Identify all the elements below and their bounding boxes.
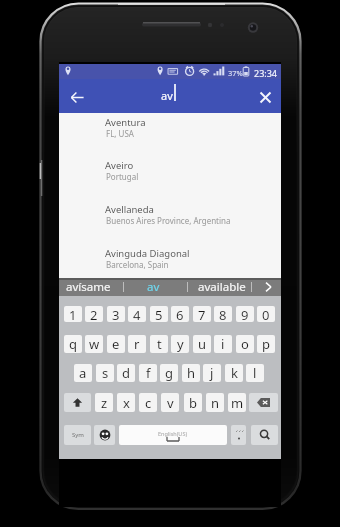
staticText: Aventura (105, 116, 146, 129)
staticText: f (146, 364, 151, 382)
button[interactable]: 8 (214, 306, 232, 322)
staticText: w (89, 335, 100, 353)
button[interactable]: 6 (171, 306, 189, 322)
button[interactable]: i (214, 335, 232, 353)
staticText: g (165, 364, 173, 382)
button[interactable]: available (194, 278, 250, 296)
button[interactable]: s (96, 364, 114, 382)
button[interactable]: 2 (85, 306, 103, 322)
button[interactable]: Avinguda Diagonal (59, 247, 281, 291)
button[interactable]: avísame (61, 278, 115, 296)
button[interactable]: Search (251, 425, 278, 445)
button[interactable]: k (225, 364, 243, 382)
staticText: 5 (155, 306, 163, 322)
button[interactable]: t (150, 335, 168, 353)
button[interactable]: Back (62, 82, 92, 112)
button[interactable]: j (203, 364, 221, 382)
staticText: q (69, 335, 77, 353)
button[interactable]: d (117, 364, 135, 382)
staticText: 4 (133, 306, 141, 322)
button[interactable]: h (182, 364, 200, 382)
staticText: k (231, 364, 238, 382)
staticText: available (198, 279, 246, 295)
staticText: o (241, 335, 249, 353)
button[interactable]: v (161, 393, 179, 412)
staticText: z (101, 394, 108, 412)
staticText: a (79, 364, 87, 382)
button[interactable]: r (128, 335, 146, 353)
button[interactable]: q (64, 335, 82, 353)
staticText: p (262, 335, 270, 353)
button[interactable]: c (139, 393, 157, 412)
staticText: Aveiro (105, 159, 134, 172)
staticText: c (145, 394, 152, 412)
button[interactable]: av (131, 278, 176, 296)
button[interactable]: 3 (107, 306, 125, 322)
button[interactable]: o (236, 335, 254, 353)
button[interactable]: Backspace (249, 393, 278, 412)
staticText: avísame (66, 279, 111, 295)
staticText: 2 (90, 306, 98, 322)
staticText: h (187, 364, 196, 382)
button[interactable]: u (193, 335, 211, 353)
staticText: av (161, 88, 173, 103)
button[interactable]: Clear search (250, 82, 280, 112)
button[interactable]: g (160, 364, 178, 382)
staticText: 8 (219, 306, 227, 322)
staticText: 1 (69, 306, 77, 322)
button[interactable]: 0 (257, 306, 275, 322)
button[interactable]: e (107, 335, 125, 353)
staticText: u (198, 335, 207, 353)
button[interactable]: Aventura (59, 116, 281, 160)
button[interactable]: l (246, 364, 264, 382)
staticText: 23:34 (254, 67, 278, 79)
button[interactable]: n (206, 393, 224, 412)
button[interactable]: 4 (128, 306, 146, 322)
staticText: English(US) (158, 430, 188, 437)
button[interactable]: y (171, 335, 189, 353)
staticText: l (253, 364, 257, 382)
staticText: e (112, 335, 120, 353)
staticText: 6 (176, 306, 184, 322)
staticText: i (221, 335, 225, 353)
staticText: m (231, 394, 244, 412)
staticText: 9 (241, 306, 249, 322)
button[interactable]: f (139, 364, 157, 382)
staticText: FL, USA (106, 128, 134, 139)
button[interactable]: m (228, 393, 246, 412)
staticText: j (210, 364, 214, 382)
staticText: Sym (72, 431, 84, 439)
staticText: 7 (198, 306, 206, 322)
button[interactable]: Sym (64, 425, 91, 445)
button[interactable]: 1 (64, 306, 82, 322)
staticText: y (177, 335, 184, 353)
button[interactable]: p (257, 335, 275, 353)
button[interactable]: w (85, 335, 103, 353)
staticText: av (147, 279, 160, 295)
button[interactable]: x (117, 393, 135, 412)
button[interactable]: 5 (150, 306, 168, 322)
button[interactable]: 7 (193, 306, 211, 322)
staticText: 0 (262, 306, 270, 322)
button[interactable]: Aveiro (59, 159, 281, 203)
button[interactable]: 9 (236, 306, 254, 322)
staticText: Avinguda Diagonal (105, 247, 190, 260)
button[interactable]: More suggestions (257, 278, 281, 296)
button[interactable]: a (74, 364, 92, 382)
staticText: 3 (112, 306, 120, 322)
staticText: t (157, 335, 162, 353)
staticText: x (123, 394, 130, 412)
button[interactable]: Period (231, 425, 246, 445)
staticText: s (102, 364, 109, 382)
button[interactable]: Avellaneda (59, 203, 281, 247)
staticText: Buenos Aires Province, Argentina (106, 215, 231, 226)
button[interactable]: Emoji (94, 425, 115, 445)
button[interactable]: b (184, 393, 202, 412)
staticText: d (122, 364, 130, 382)
staticText: n (211, 394, 220, 412)
staticText: r (134, 335, 140, 353)
button[interactable]: Shift (64, 393, 91, 412)
button[interactable]: Space (119, 425, 227, 445)
staticText: Avellaneda (105, 203, 154, 216)
button[interactable]: z (95, 393, 113, 412)
